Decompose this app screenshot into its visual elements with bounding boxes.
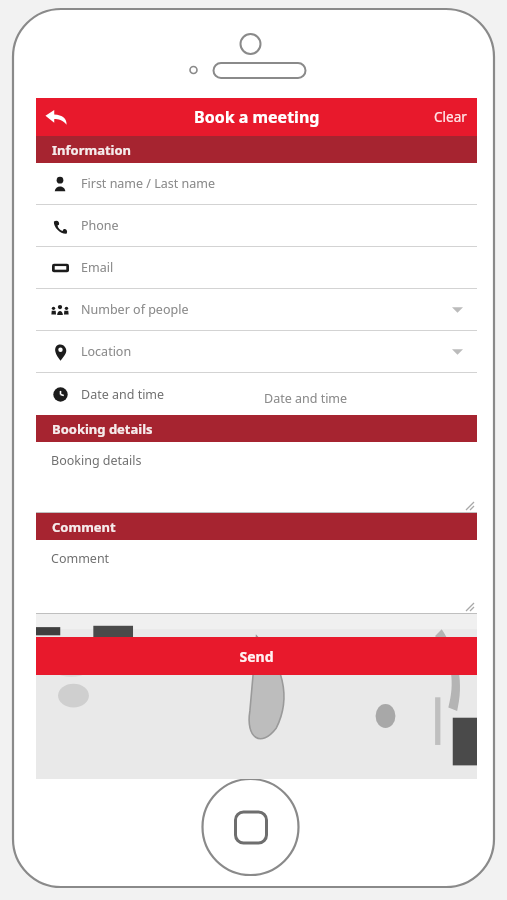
staticText: Booking details [52, 420, 153, 438]
staticText: Booking details [51, 452, 142, 469]
button[interactable]: Back [36, 98, 76, 136]
button[interactable]: Comment [36, 513, 477, 540]
staticText: Comment [52, 518, 116, 536]
button[interactable]: Date and time [36, 373, 477, 415]
staticText: First name / Last name [81, 175, 463, 192]
button[interactable]: Clear [424, 98, 477, 136]
staticText: Send [239, 647, 274, 666]
staticText: Date and time [81, 386, 165, 403]
button[interactable]: Number of people [36, 289, 477, 331]
staticText: Location [81, 343, 452, 360]
button[interactable]: First name / Last name [36, 163, 477, 205]
button[interactable]: Information [36, 136, 477, 163]
staticText: Comment [51, 550, 110, 567]
staticText: Date and time [264, 390, 348, 407]
staticText: Phone [81, 217, 463, 234]
staticText: Information [52, 141, 132, 159]
button[interactable]: Phone [36, 205, 477, 247]
staticText: Clear [434, 108, 467, 126]
button[interactable]: Email [36, 247, 477, 289]
button[interactable]: Booking details [36, 442, 477, 513]
staticText: Number of people [81, 301, 452, 318]
staticText: Email [81, 259, 463, 276]
button[interactable]: Booking details [36, 415, 477, 442]
button[interactable]: Location [36, 331, 477, 373]
button[interactable]: Comment [36, 540, 477, 614]
staticText: Book a meeting [194, 106, 320, 128]
button[interactable]: Send [36, 637, 477, 675]
